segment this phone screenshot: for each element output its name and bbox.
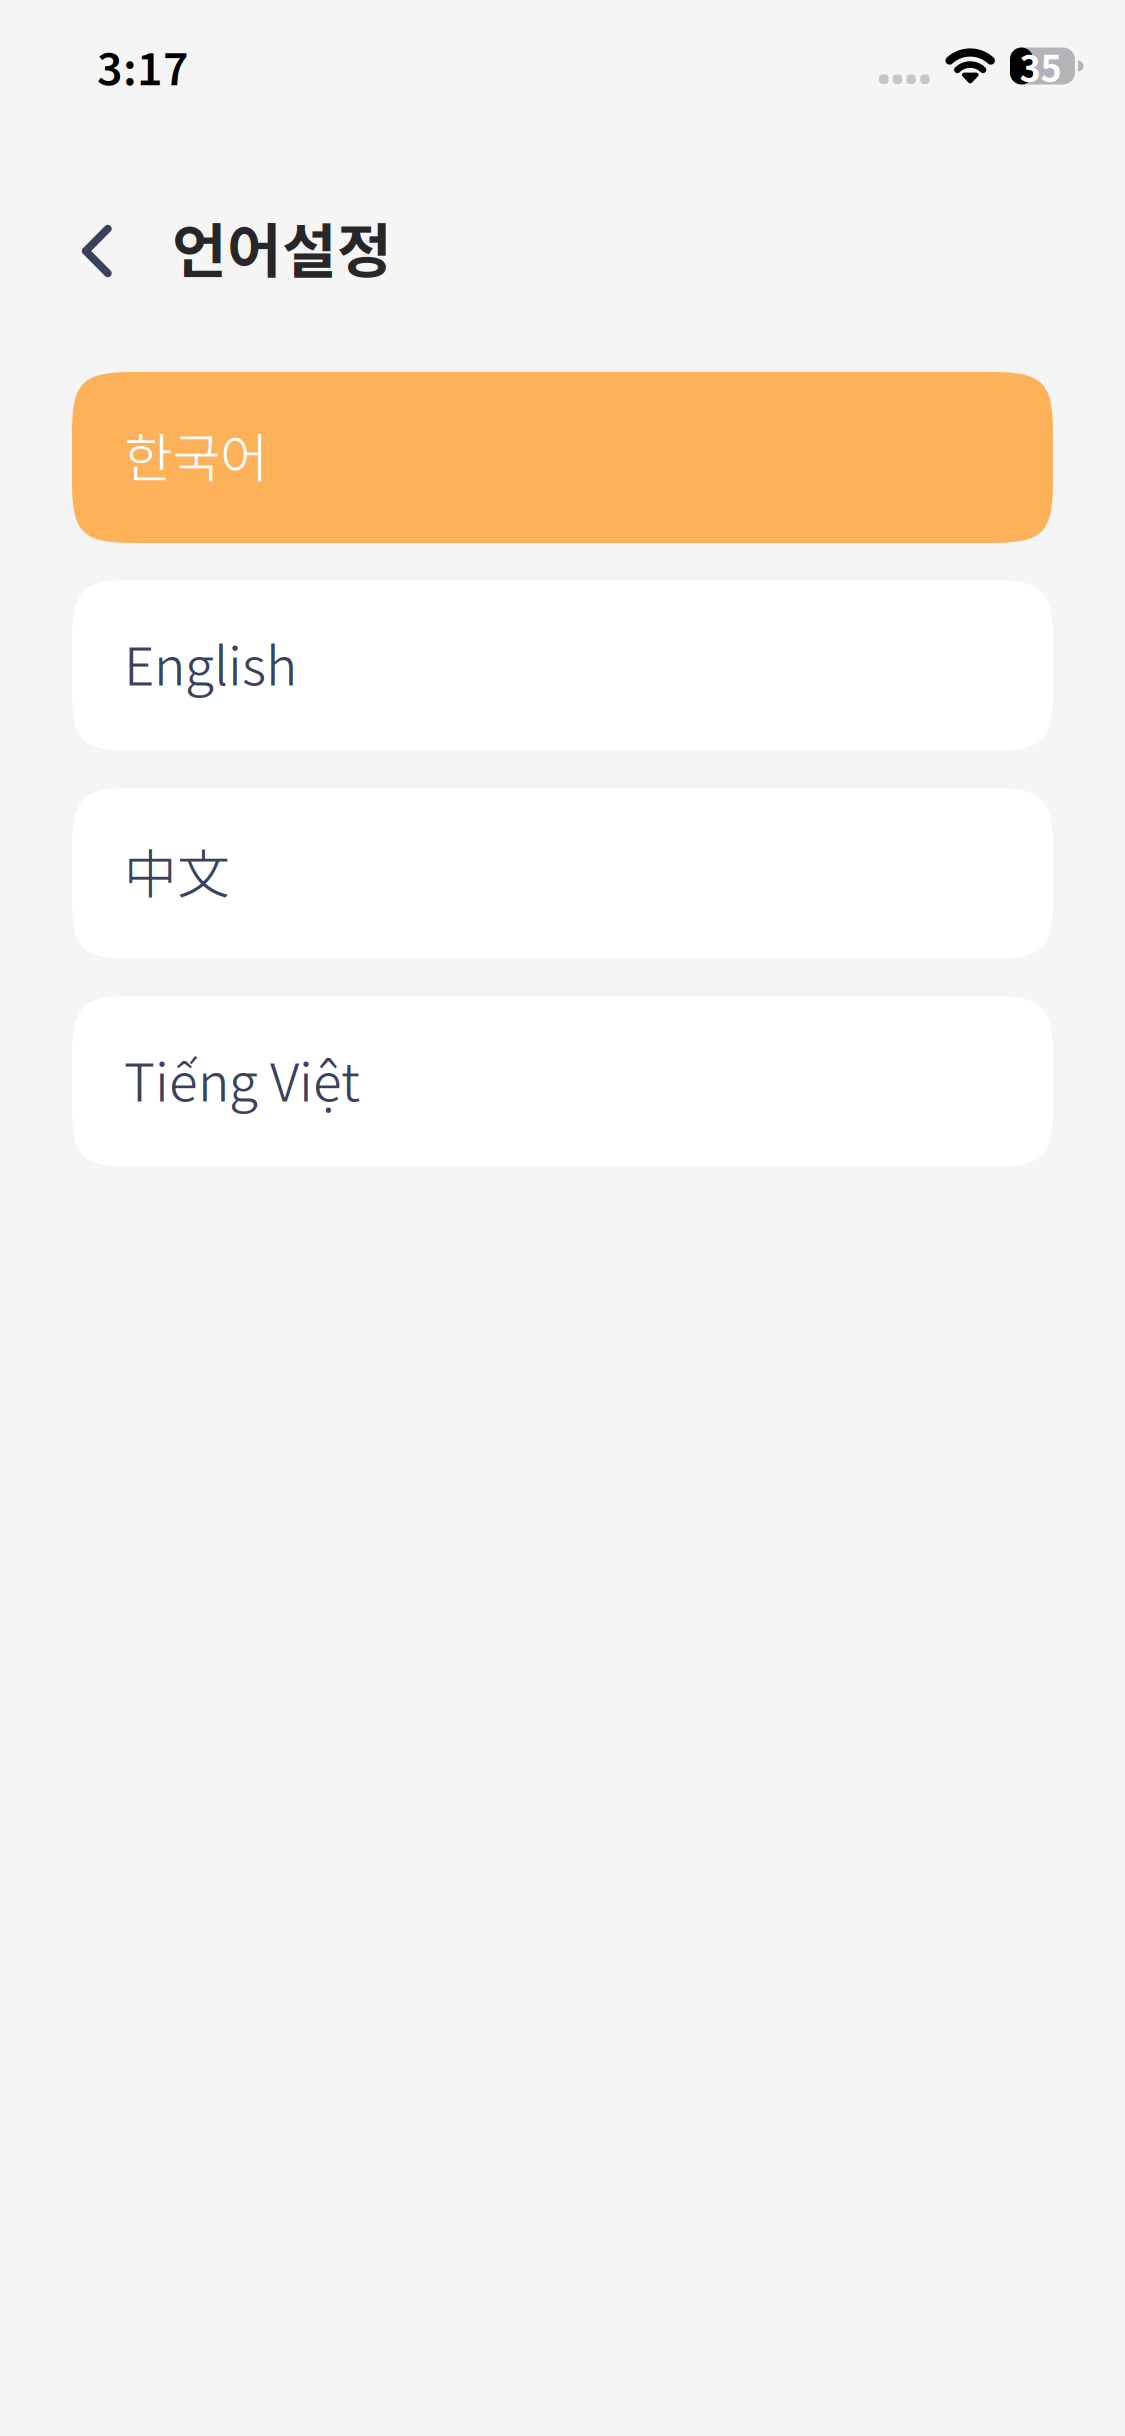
staticText: 한국어 <box>124 416 268 493</box>
button[interactable]: Tiếng Việt <box>72 996 1053 1167</box>
staticText: Tiếng Việt <box>124 1040 360 1117</box>
button[interactable]: Back <box>82 192 172 302</box>
staticText: 3:17 <box>97 34 189 98</box>
button[interactable]: English <box>72 580 1053 751</box>
staticText: 中文 <box>124 832 230 909</box>
staticText: 35 <box>1019 40 1061 92</box>
button[interactable]: 中文 <box>72 788 1053 959</box>
button[interactable]: 한국어 <box>72 372 1053 543</box>
staticText: 언어설정 <box>172 204 392 290</box>
staticText: English <box>124 624 297 701</box>
